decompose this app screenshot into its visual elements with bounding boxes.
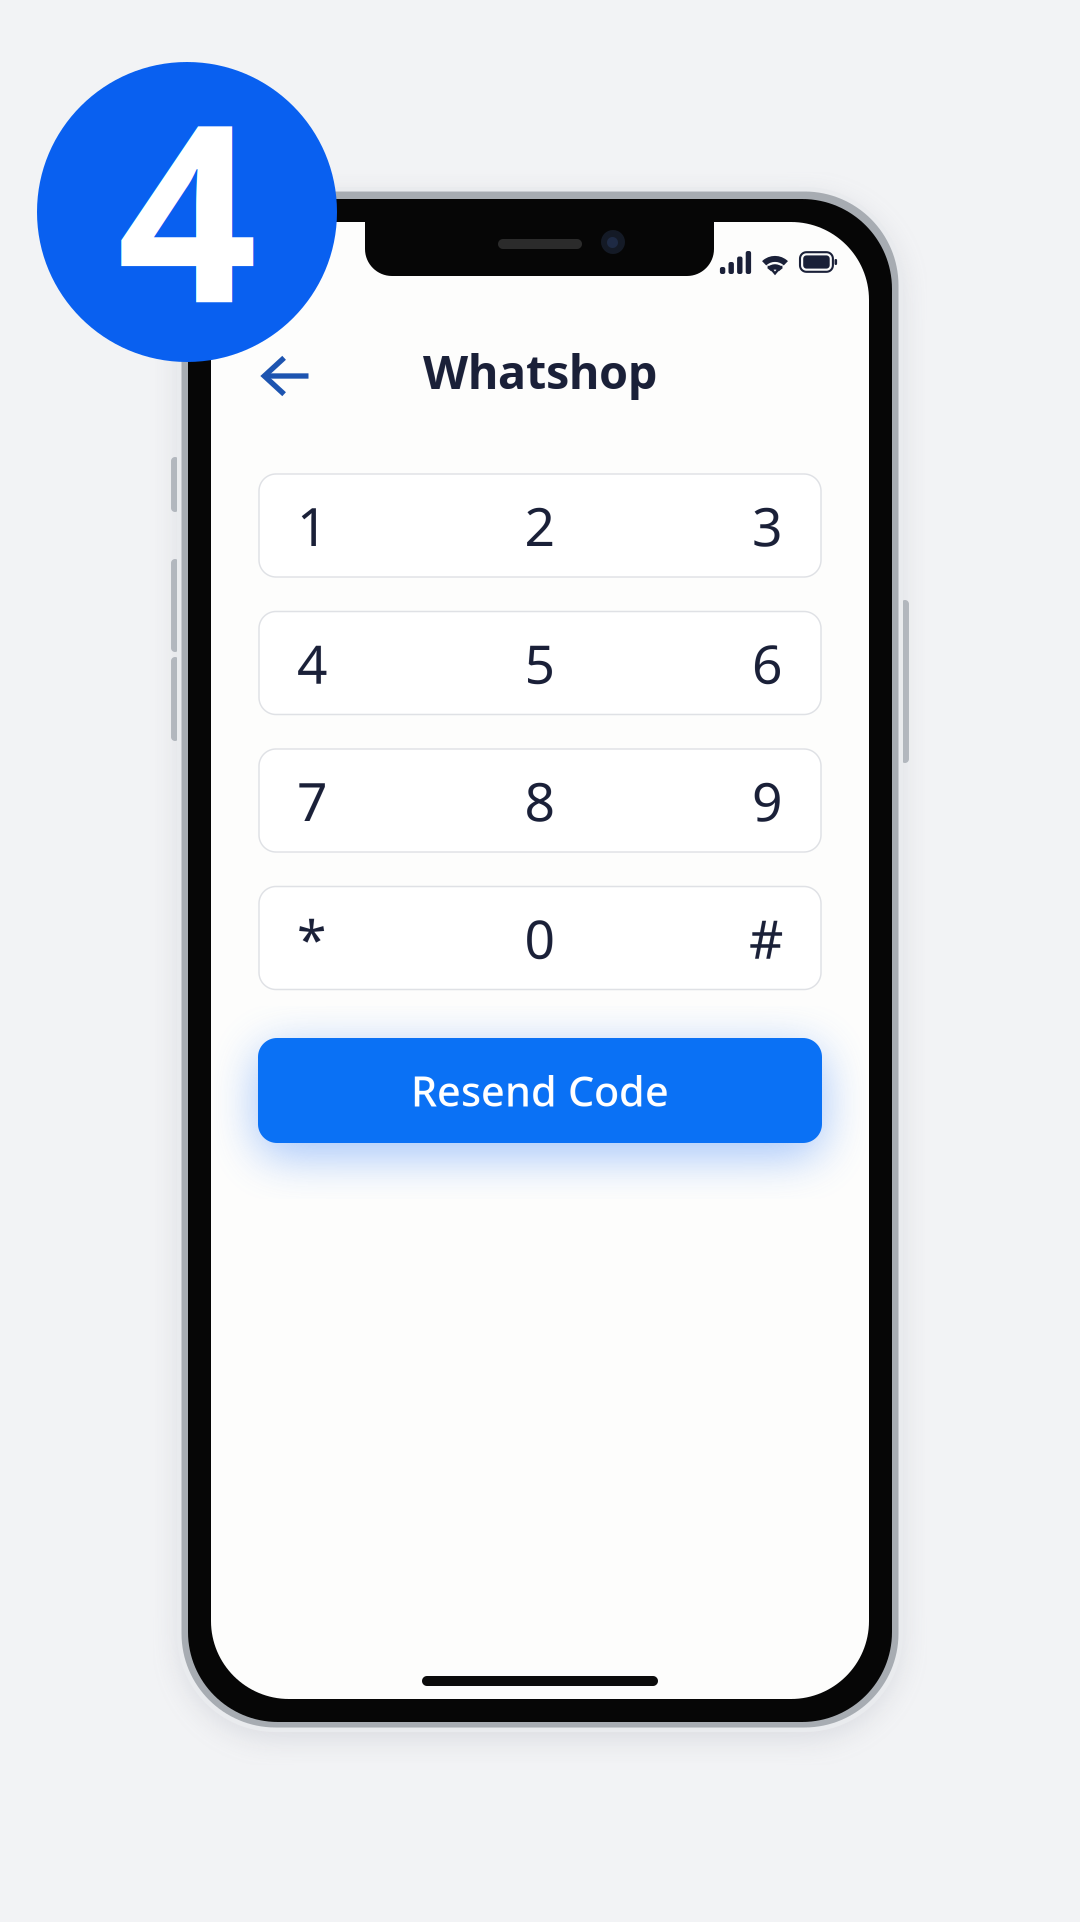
staticText: 9 bbox=[752, 765, 783, 836]
staticText: 3 bbox=[752, 490, 783, 561]
staticText: 0 bbox=[524, 903, 555, 973]
staticText: # bbox=[749, 903, 783, 973]
staticText: Resend Code bbox=[411, 1063, 669, 1118]
staticText: * bbox=[297, 903, 326, 973]
button[interactable]: * bbox=[297, 886, 459, 989]
button[interactable]: 2 bbox=[459, 474, 621, 577]
staticText: 7 bbox=[297, 765, 328, 836]
button[interactable]: 7 bbox=[297, 749, 459, 852]
button[interactable]: Back bbox=[249, 345, 323, 407]
button[interactable]: Resend Code bbox=[258, 1038, 822, 1143]
staticText: 4 bbox=[117, 44, 257, 370]
button[interactable]: 0 bbox=[459, 886, 621, 989]
button[interactable]: # bbox=[621, 886, 783, 989]
button[interactable]: 8 bbox=[459, 749, 621, 852]
button[interactable]: 4 bbox=[297, 611, 459, 714]
staticText: 5 bbox=[524, 628, 555, 698]
staticText: 6 bbox=[752, 628, 783, 698]
staticText: 1 bbox=[297, 490, 328, 561]
button[interactable]: 3 bbox=[621, 474, 783, 577]
button[interactable]: 6 bbox=[621, 611, 783, 714]
staticText: Whatshop bbox=[423, 340, 657, 402]
staticText: 4 bbox=[297, 628, 328, 698]
button[interactable]: 9 bbox=[621, 749, 783, 852]
staticText: 8 bbox=[524, 765, 555, 836]
staticText: 2 bbox=[524, 490, 555, 561]
button[interactable]: 5 bbox=[459, 611, 621, 714]
button[interactable]: 1 bbox=[297, 474, 459, 577]
